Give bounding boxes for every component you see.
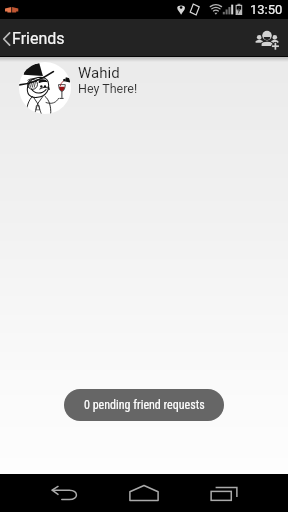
staticText: 0 pending friend requests [84,398,205,412]
button[interactable]: Add friends [251,22,283,54]
button[interactable]: Back [44,474,84,512]
staticText: Friends [12,29,65,48]
staticText: 13:50 [250,2,283,17]
button[interactable]: 0 pending friend requests [64,389,224,421]
button[interactable]: Wahid [0,57,288,119]
staticText: Hey There! [78,81,138,96]
button[interactable]: Home [124,474,164,512]
staticText: Wahid [78,64,120,82]
button[interactable]: Friends [0,19,288,57]
button[interactable]: Recents [204,474,244,512]
